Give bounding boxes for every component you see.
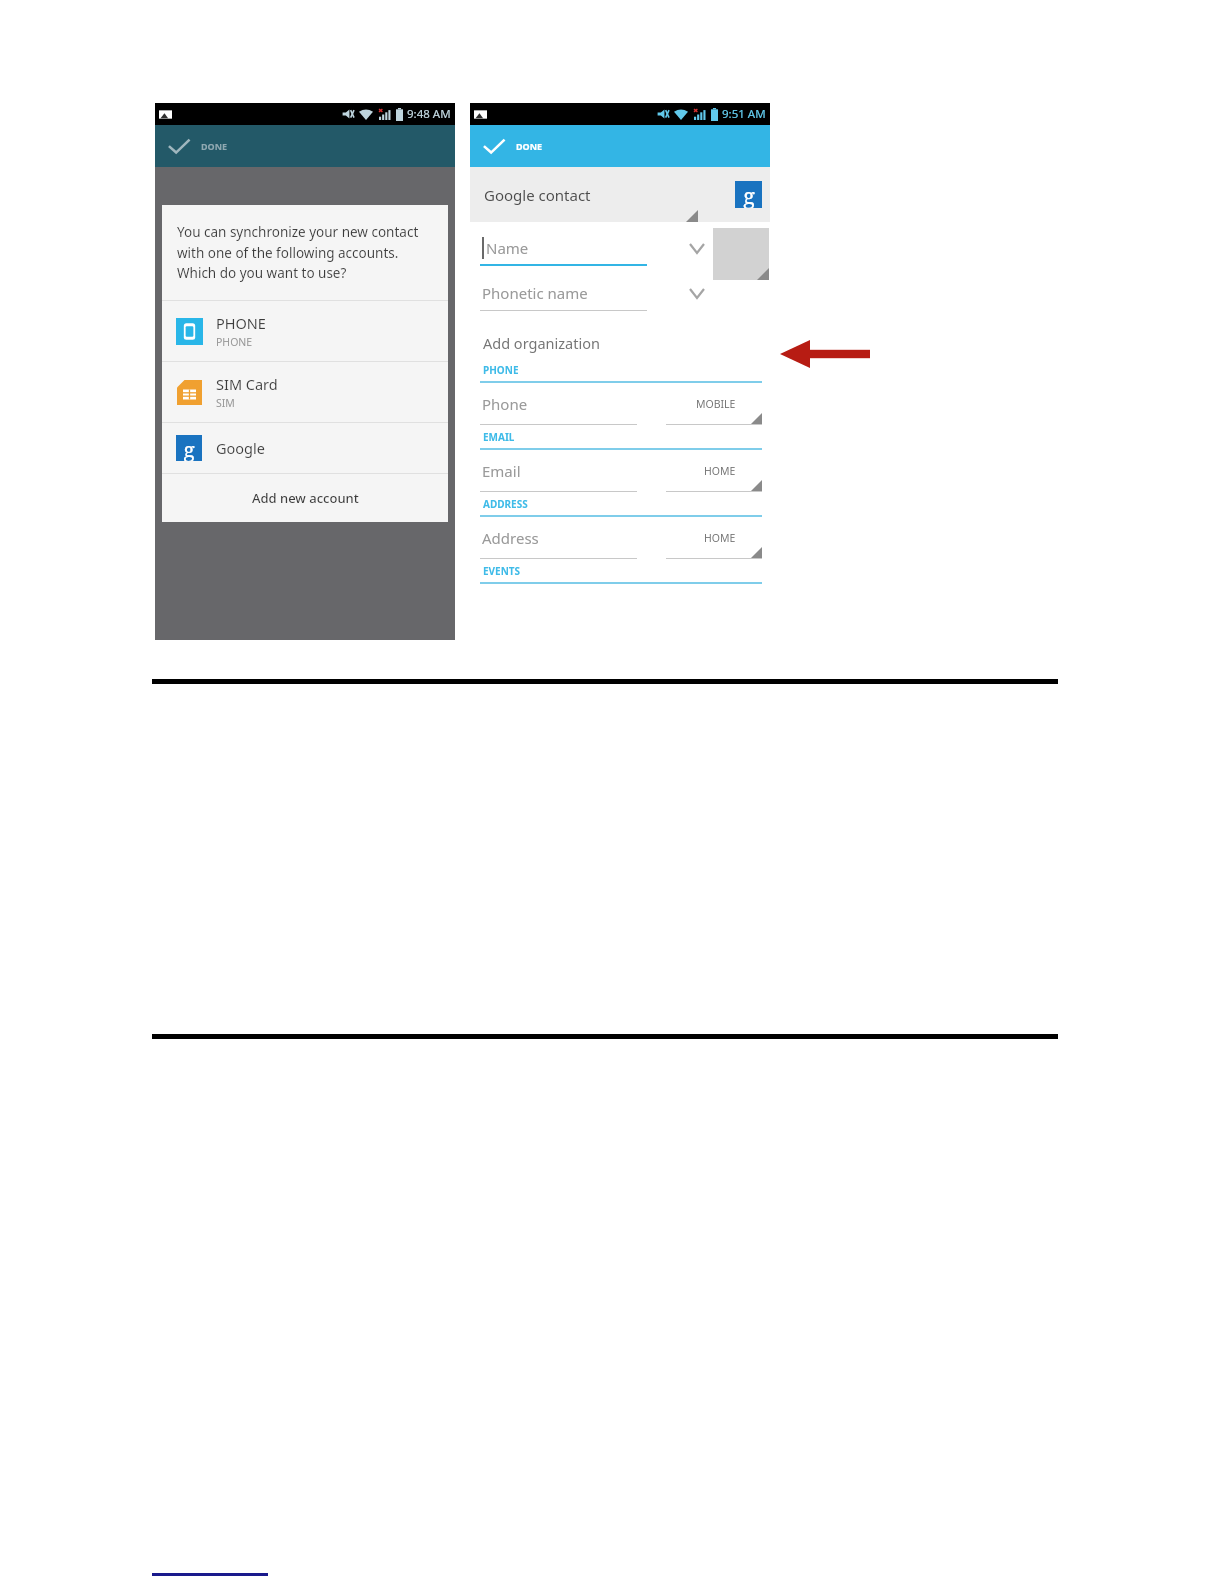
staticText: DONE bbox=[516, 140, 543, 152]
staticText: ADDRESS bbox=[483, 497, 528, 511]
staticText: 9:51 AM bbox=[722, 106, 766, 122]
staticText: Phonetic name bbox=[482, 283, 588, 303]
staticText: Google bbox=[216, 438, 265, 458]
button[interactable]: Email bbox=[470, 450, 770, 492]
staticText: HOME bbox=[704, 464, 736, 478]
staticText: EMAIL bbox=[483, 430, 515, 444]
button[interactable]: Phonetic name bbox=[470, 275, 770, 311]
button[interactable]: DONE bbox=[155, 125, 455, 167]
button[interactable]: DONE bbox=[470, 125, 770, 167]
staticText: Google contact bbox=[484, 185, 591, 205]
button[interactable]: Google contact bbox=[470, 167, 770, 222]
staticText: Phone bbox=[482, 394, 528, 414]
button[interactable]: Address bbox=[470, 517, 770, 559]
button[interactable]: Add contact photo bbox=[713, 228, 769, 280]
staticText: 9:48 AM bbox=[407, 106, 451, 122]
staticText: Add new account bbox=[252, 489, 359, 507]
button[interactable]: Phone bbox=[470, 383, 770, 425]
button[interactable]: PHONE bbox=[162, 301, 448, 361]
button[interactable]: Name bbox=[470, 230, 770, 266]
button[interactable]: Add organization bbox=[470, 328, 770, 358]
button[interactable]: g bbox=[162, 423, 448, 473]
staticText: SIM bbox=[216, 396, 235, 410]
staticText: Add organization bbox=[483, 333, 600, 353]
staticText: PHONE bbox=[216, 335, 253, 349]
staticText: g bbox=[743, 181, 755, 208]
staticText: You can synchronize your new contact wit… bbox=[177, 223, 438, 282]
staticText: SIM Card bbox=[216, 374, 278, 394]
button[interactable]: Add new account bbox=[162, 474, 448, 522]
staticText: PHONE bbox=[483, 363, 519, 377]
staticText: Address bbox=[482, 528, 539, 548]
button[interactable]: SIM Card bbox=[162, 362, 448, 422]
staticText: PHONE bbox=[216, 313, 266, 333]
staticText: g bbox=[183, 435, 195, 461]
staticText: Name bbox=[486, 238, 529, 258]
staticText: HOME bbox=[704, 531, 736, 545]
staticText: EVENTS bbox=[483, 564, 521, 578]
staticText: MOBILE bbox=[696, 397, 736, 411]
staticText: DONE bbox=[201, 140, 228, 152]
staticText: Email bbox=[482, 461, 521, 481]
